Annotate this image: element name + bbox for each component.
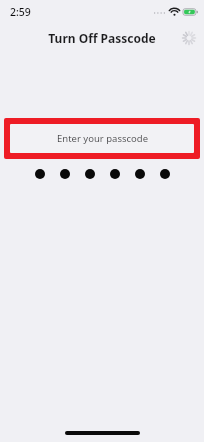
staticText: Turn Off Passcode	[48, 30, 156, 46]
button[interactable]: Enter your passcode	[4, 118, 200, 159]
staticText: Enter your passcode	[57, 132, 148, 145]
staticText: 2:59	[10, 5, 31, 19]
other: Loading	[180, 29, 198, 47]
